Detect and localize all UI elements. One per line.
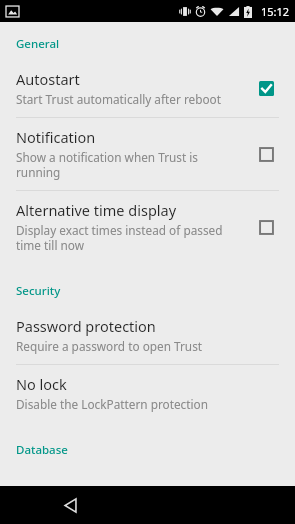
staticText: No lock	[16, 374, 67, 394]
button[interactable]: Back	[52, 487, 88, 523]
staticText: Start Trust automatically after reboot	[16, 91, 221, 107]
staticText: 15:12	[261, 4, 290, 19]
button[interactable]: Notification	[0, 118, 295, 190]
button[interactable]: Alternative time display	[0, 191, 295, 263]
staticText: Disable the LockPattern protection	[16, 396, 208, 412]
staticText: Display exact times instead of passed ti…	[16, 222, 241, 253]
button[interactable]: Unchecked	[251, 139, 281, 169]
button[interactable]: No lock	[0, 365, 295, 422]
staticText: Show a notification when Trust is runnin…	[16, 149, 241, 180]
button[interactable]: Checked	[251, 73, 281, 103]
button[interactable]: Password protection	[0, 307, 295, 364]
staticText: Alternative time display	[16, 200, 177, 220]
staticText: Autostart	[16, 69, 80, 89]
staticText: Security	[16, 283, 61, 299]
staticText: Password protection	[16, 316, 156, 336]
staticText: Database	[16, 442, 68, 458]
staticText: Require a password to open Trust	[16, 338, 203, 354]
button[interactable]: Autostart	[0, 60, 295, 117]
button[interactable]: Unchecked	[251, 212, 281, 242]
staticText: Notification	[16, 127, 96, 147]
staticText: General	[16, 36, 60, 52]
